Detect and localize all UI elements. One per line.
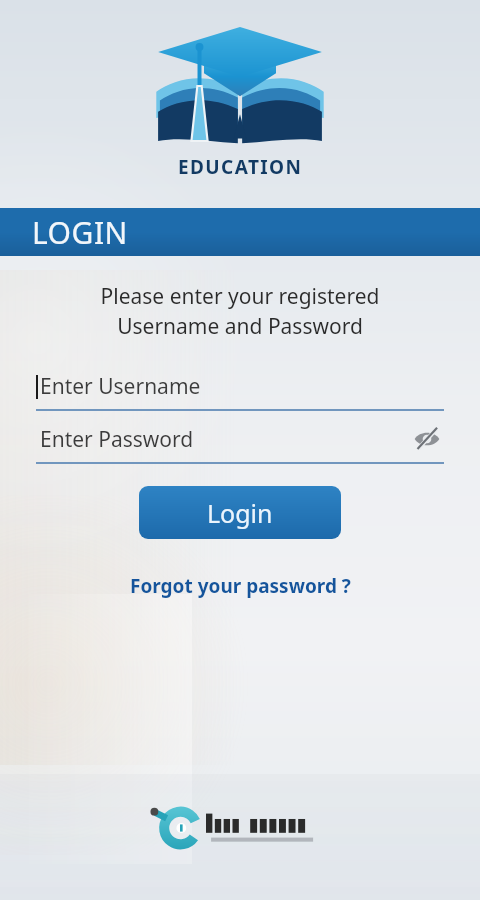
staticText: Login (207, 496, 273, 530)
staticText: Forgot your password ? (130, 573, 351, 599)
button[interactable]: Enter Username (36, 372, 444, 411)
staticText: LOGIN (32, 212, 128, 253)
staticText: EDUCATION (178, 154, 303, 180)
button[interactable]: Show password (410, 422, 444, 456)
staticText: Enter Password (40, 425, 194, 454)
button[interactable]: Forgot your password ? (120, 569, 361, 603)
staticText: Please enter your registered Username an… (0, 282, 480, 340)
button[interactable]: Enter Password (36, 422, 444, 464)
staticText: Enter Username (40, 372, 201, 401)
button[interactable]: Login (139, 486, 341, 539)
